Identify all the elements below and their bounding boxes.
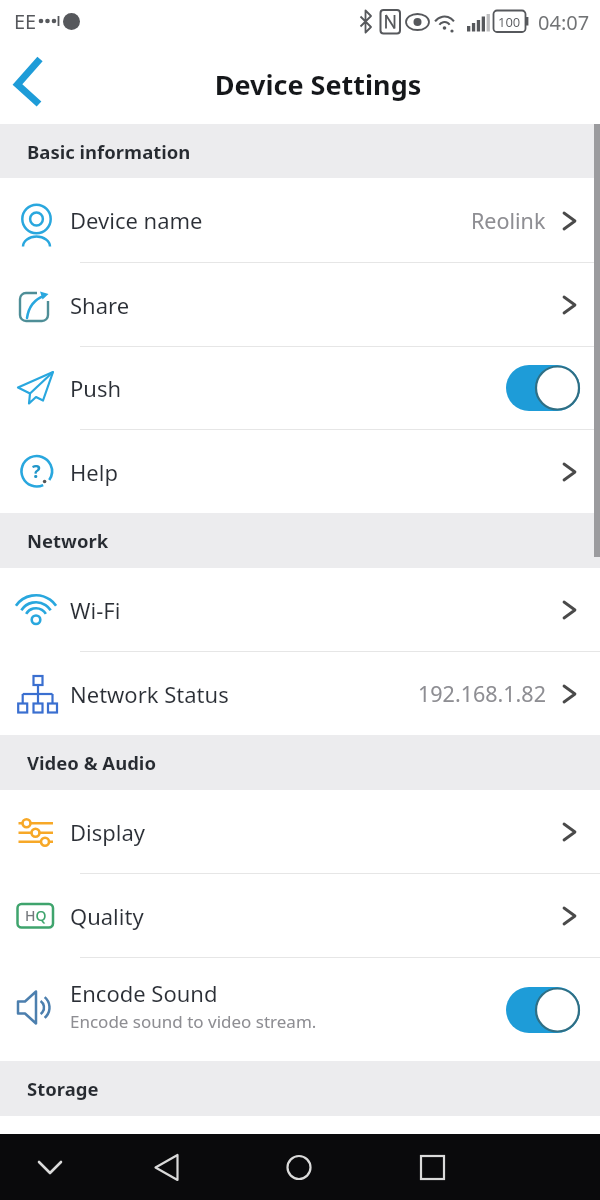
staticText: ? [32,459,41,484]
staticText: 04:07 [538,9,590,36]
button[interactable] [150,1134,300,1200]
staticText: Video & Audio [27,750,156,775]
button[interactable]: Wi-Fi [0,568,600,651]
staticText: 192.168.1.82 [418,679,546,708]
button[interactable]: ? [0,430,600,513]
button[interactable]: Encode Sound [0,958,600,1061]
staticText: Storage [27,1076,99,1101]
staticText: Encode Sound [70,978,218,1008]
staticText: Network Status [70,679,229,709]
staticText: Help [70,457,118,487]
button[interactable]: Share [0,263,600,346]
staticText: Reolink [471,206,546,235]
button[interactable]: HQ [0,874,600,957]
staticText: Device Settings [36,66,600,103]
staticText: EE [14,8,37,35]
staticText: Push [70,373,122,403]
staticText: Display [70,817,146,847]
staticText: Basic information [27,139,191,164]
staticText: Share [70,290,130,320]
button[interactable]: Device name [0,178,600,262]
button[interactable] [0,1134,150,1200]
button[interactable] [506,987,580,1033]
button[interactable]: Push [0,347,600,429]
staticText: Network [27,528,109,553]
button[interactable] [300,1134,450,1200]
button[interactable] [15,63,45,107]
button[interactable]: Network Status [0,652,600,735]
button[interactable] [506,365,580,411]
staticText: Encode sound to video stream. [70,1010,317,1033]
button[interactable]: Display [0,790,600,873]
staticText: Wi-Fi [70,595,121,625]
staticText: 100 [498,13,521,31]
staticText: Quality [70,901,144,931]
staticText: Device name [70,205,203,235]
staticText: HQ [25,906,47,925]
